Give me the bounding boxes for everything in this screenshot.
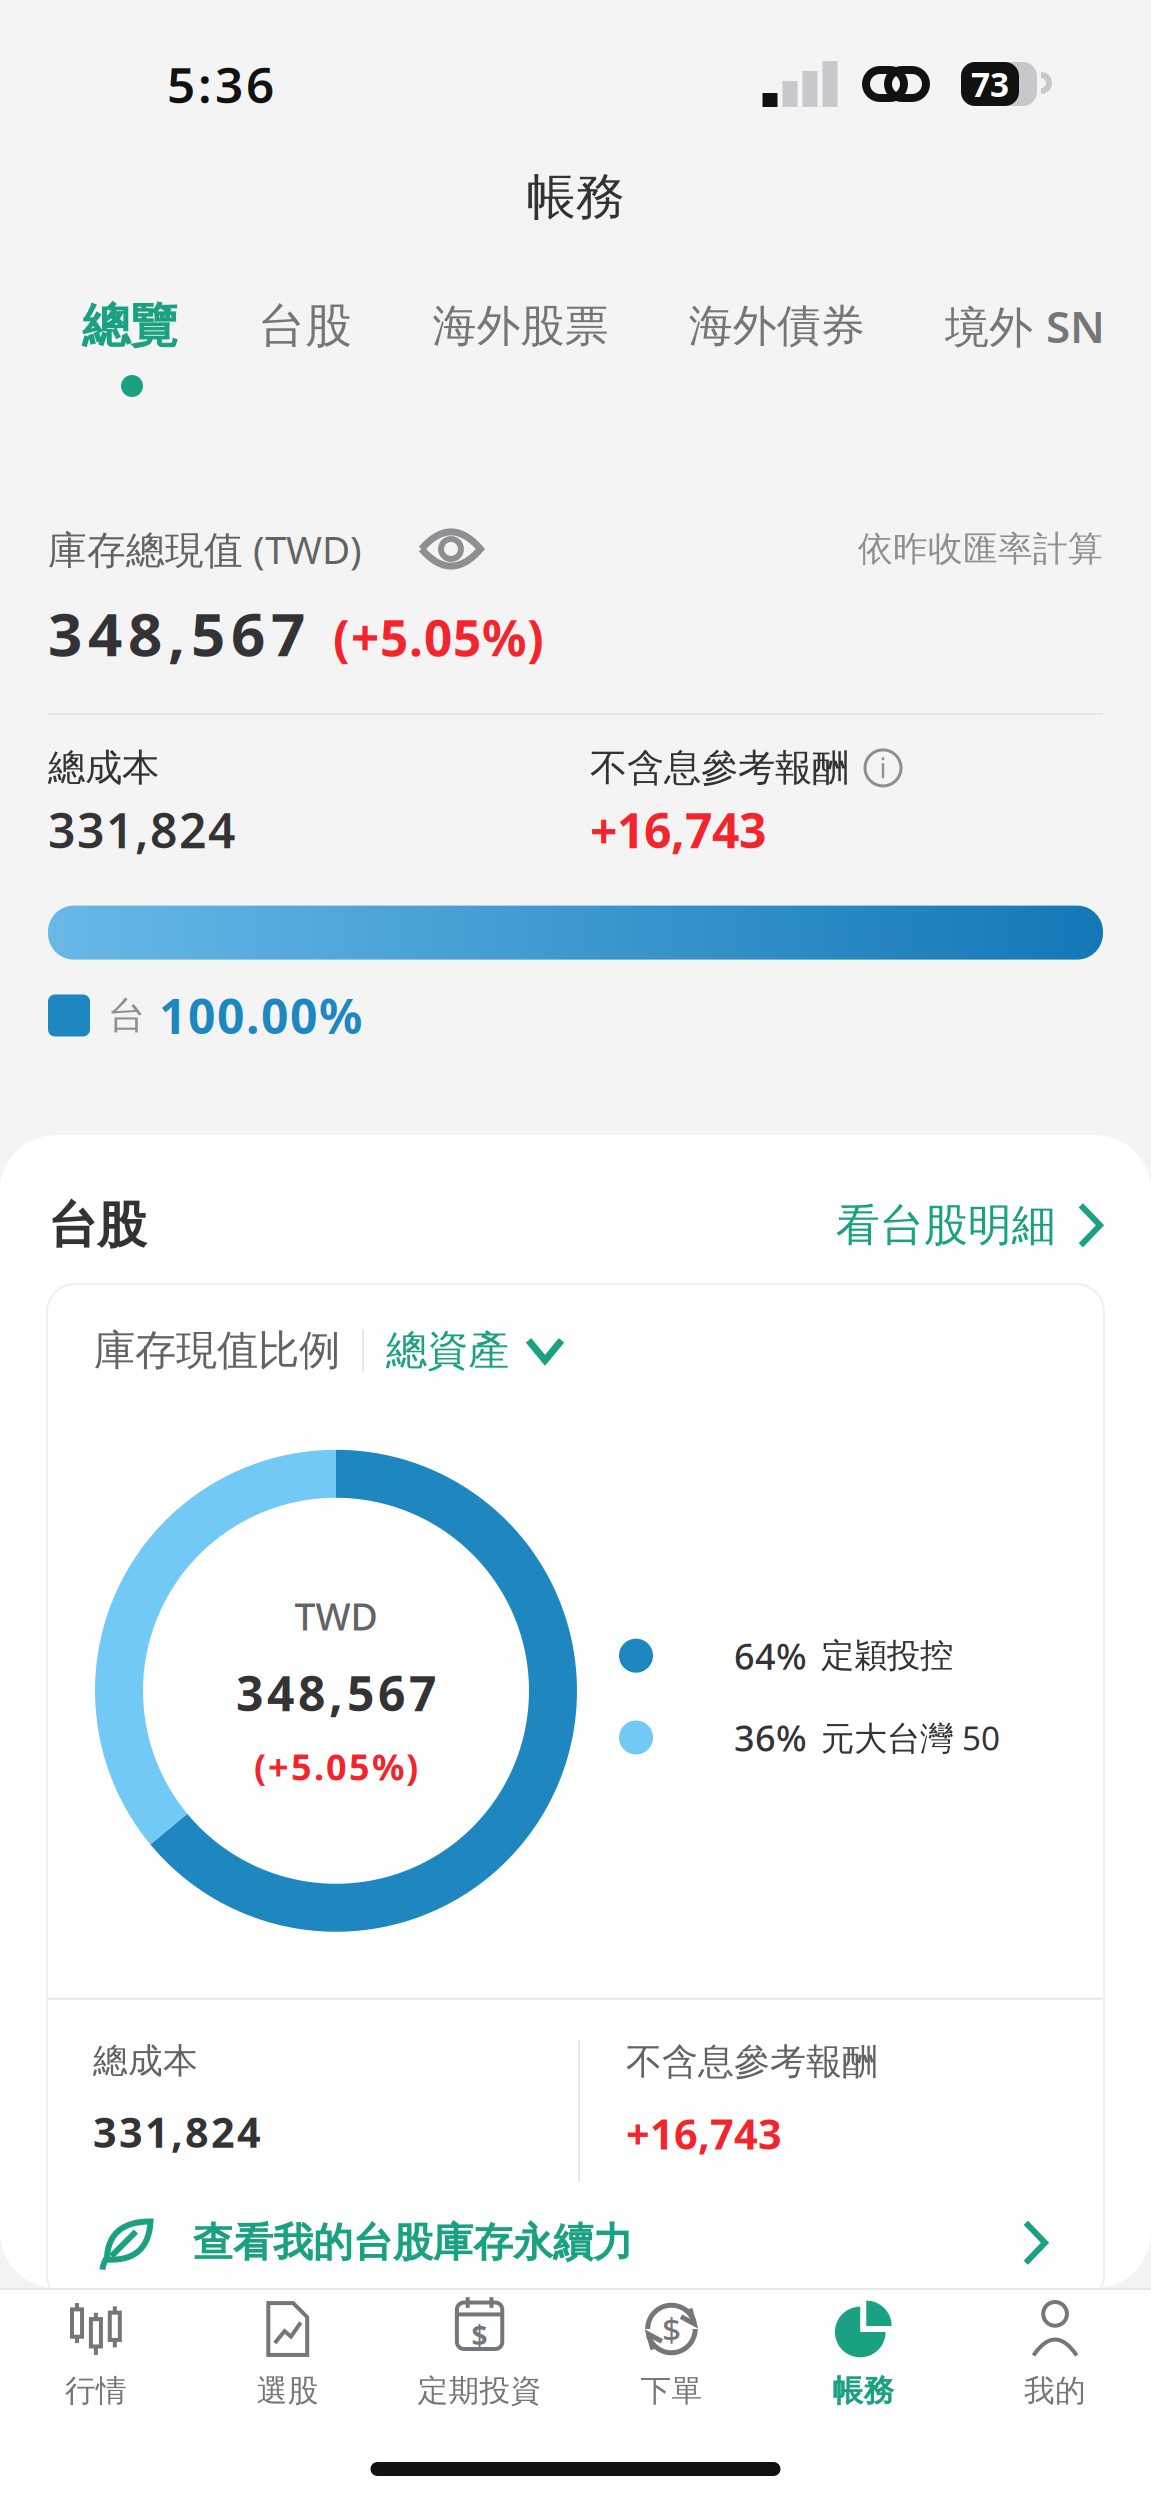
staticText: $ xyxy=(662,2307,681,2351)
staticText: 348,567 xyxy=(236,1661,436,1724)
button[interactable]: $ xyxy=(575,2290,767,2420)
staticText: 100.00% xyxy=(159,984,362,1047)
staticText: 總成本 xyxy=(48,745,159,791)
staticText: $ xyxy=(472,2316,488,2353)
staticText: 選股 xyxy=(257,2372,319,2410)
staticText: (+5.05%) xyxy=(333,604,544,670)
staticText: +16,743 xyxy=(590,798,766,862)
button[interactable]: $ xyxy=(384,2290,575,2420)
staticText: 台 xyxy=(108,992,145,1038)
button[interactable]: 帳務 xyxy=(767,2290,959,2420)
button[interactable]: 總覽 xyxy=(82,296,178,355)
staticText: 帳務 xyxy=(526,167,624,227)
staticText: 海外股票 xyxy=(432,299,608,353)
staticText: 查看我的台股庫存永續力 xyxy=(193,2218,633,2267)
staticText: 定期投資 xyxy=(418,2372,542,2410)
button[interactable]: 海外股票 xyxy=(432,299,608,353)
button[interactable]: 海外債券 xyxy=(689,299,865,353)
button[interactable]: 我的 xyxy=(959,2290,1151,2420)
staticText: 下單 xyxy=(640,2372,702,2410)
button[interactable]: 行情 xyxy=(0,2290,192,2420)
button[interactable]: 台股 xyxy=(258,297,352,355)
staticText: 定穎投控 xyxy=(821,1635,953,1676)
staticText: 台股 xyxy=(48,1195,146,1256)
button[interactable]: 境外 SN xyxy=(945,297,1105,355)
staticText: 海外債券 xyxy=(689,299,865,353)
staticText: 73 xyxy=(971,62,1009,106)
staticText: 總資產 xyxy=(386,1325,509,1376)
staticText: 331,824 xyxy=(93,2104,261,2159)
staticText: 元大台灣 50 xyxy=(821,1715,1000,1760)
staticText: 總覽 xyxy=(82,296,178,355)
staticText: 總成本 xyxy=(93,2040,198,2082)
staticText: 行情 xyxy=(65,2372,127,2410)
staticText: 不含息參考報酬 xyxy=(626,2040,878,2084)
staticText: TWD xyxy=(294,1591,377,1641)
staticText: 36% xyxy=(734,1714,807,1761)
staticText: 331,824 xyxy=(48,798,235,862)
button[interactable]: Toggle balance visibility xyxy=(362,525,484,573)
button[interactable]: 選股 xyxy=(192,2290,384,2420)
button[interactable]: 總資產 xyxy=(386,1325,572,1376)
staticText: 不含息參考報酬 xyxy=(590,745,849,791)
staticText: 庫存現值比例 xyxy=(94,1325,340,1376)
staticText: 5:36 xyxy=(167,51,274,117)
staticText: 我的 xyxy=(1024,2372,1086,2410)
staticText: 帳務 xyxy=(832,2372,894,2410)
staticText: 348,567 xyxy=(48,593,305,673)
staticText: +16,743 xyxy=(626,2106,782,2161)
staticText: 台股 xyxy=(258,297,352,355)
staticText: (+5.05%) xyxy=(254,1742,418,1790)
staticText: 境外 SN xyxy=(945,297,1105,355)
staticText: 依昨收匯率計算 xyxy=(858,528,1103,570)
staticText: 64% xyxy=(734,1632,807,1680)
staticText: 庫存總現值 (TWD) xyxy=(48,523,362,575)
staticText: i xyxy=(879,750,886,786)
button[interactable]: 看台股明細 xyxy=(836,1198,1103,1252)
button[interactable]: 查看我的台股庫存永續力 xyxy=(47,2182,1104,2304)
staticText: 看台股明細 xyxy=(836,1198,1056,1252)
